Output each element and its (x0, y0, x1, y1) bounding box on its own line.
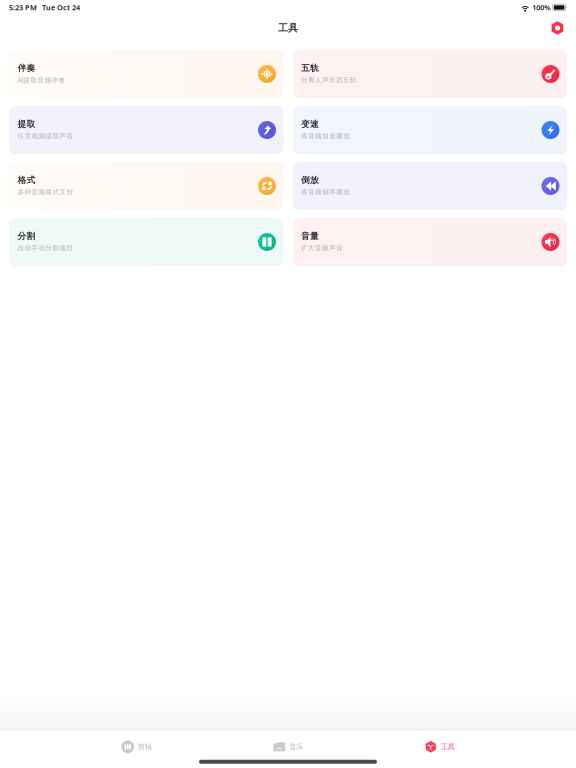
button[interactable]: Record (545, 17, 570, 38)
staticText: 将音频加速播放 (301, 132, 350, 140)
staticText: 工具 (278, 22, 298, 34)
staticText: 工具 (441, 742, 455, 751)
staticText: 倒放 (301, 174, 319, 185)
staticText: 分离人声乐器五轨 (301, 76, 357, 84)
staticText: 格式 (17, 174, 35, 185)
button[interactable]: 格式 (9, 162, 283, 210)
staticText: 将音频倒序播放 (301, 188, 350, 196)
staticText: 自动手动分割成段 (17, 244, 73, 252)
staticText: 任意视频提取声音 (17, 132, 73, 140)
button[interactable]: 伴奏 (9, 50, 283, 98)
staticText: 伴奏 (17, 62, 35, 73)
button[interactable]: 工具 (364, 734, 515, 760)
staticText: 音乐 (289, 742, 303, 751)
button[interactable]: 变速 (292, 106, 567, 154)
staticText: 五轨 (301, 62, 319, 73)
button[interactable]: 五轨 (292, 50, 567, 98)
button[interactable]: 音乐 (212, 734, 364, 760)
staticText: 变速 (301, 118, 319, 129)
button[interactable]: 剪辑 (61, 734, 212, 760)
button[interactable]: 音量 (292, 218, 567, 266)
staticText: Tue Oct 24 (42, 2, 80, 12)
button[interactable]: 分割 (9, 218, 283, 266)
staticText: 分割 (17, 230, 35, 241)
staticText: 扩大音频声音 (301, 244, 343, 252)
button[interactable]: 倒放 (292, 162, 567, 210)
staticText: 多种音频格式互转 (17, 188, 73, 196)
staticText: AI提取音频伴奏 (17, 75, 65, 84)
staticText: 提取 (17, 118, 35, 129)
staticText: 5:23 PM (9, 2, 37, 12)
staticText: 100% (532, 2, 550, 12)
staticText: 音量 (301, 230, 319, 241)
button[interactable]: 提取 (9, 106, 283, 154)
staticText: 剪辑 (138, 742, 152, 751)
